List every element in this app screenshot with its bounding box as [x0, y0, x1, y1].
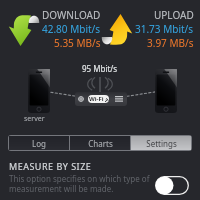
staticText: 31.73 Mbit/s: [135, 22, 194, 36]
staticText: UPLOAD: [154, 8, 194, 22]
staticText: MEASURE BY SIZE: [9, 160, 92, 172]
staticText: 95 Mbit/s: [82, 63, 118, 74]
staticText: 3.97 MB/s: [147, 36, 194, 50]
button[interactable]: Charts: [70, 136, 130, 150]
staticText: This option specifies on which type of m…: [9, 173, 150, 194]
button[interactable]: Settings: [131, 136, 191, 150]
staticText: Log: [32, 138, 46, 149]
staticText: server: [24, 114, 45, 124]
staticText: Wi-Fi: [89, 95, 104, 103]
staticText: Charts: [88, 138, 113, 149]
staticText: 5.35 MB/s: [54, 36, 101, 50]
button[interactable]: Measure by size: [155, 176, 189, 195]
staticText: DOWNLOAD: [42, 8, 101, 22]
staticText: Settings: [146, 138, 177, 149]
button[interactable]: Log: [9, 136, 69, 150]
button[interactable]: Router: [75, 92, 127, 106]
staticText: 42.80 Mbit/s: [42, 22, 101, 36]
